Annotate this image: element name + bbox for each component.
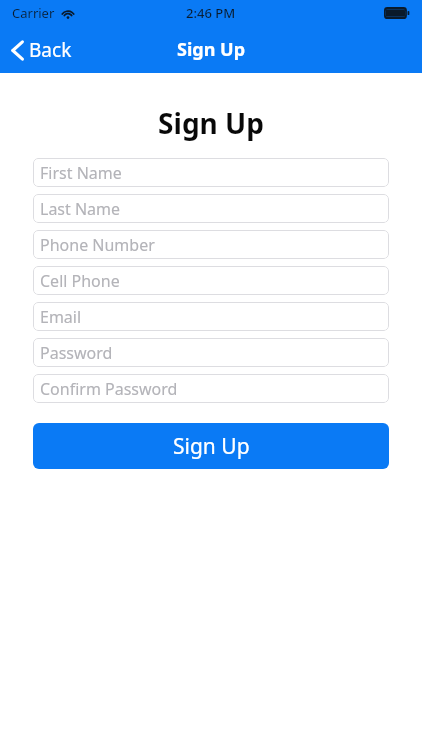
staticText: Confirm Password (40, 378, 178, 400)
button[interactable]: Last Name (33, 194, 389, 223)
button[interactable]: Email (33, 302, 389, 331)
staticText: Back (29, 37, 72, 63)
staticText: Password (40, 342, 113, 364)
staticText: 2:46 PM (186, 4, 236, 22)
button[interactable]: Password (33, 338, 389, 367)
staticText: First Name (40, 162, 122, 184)
button[interactable]: Sign Up (33, 423, 389, 469)
button[interactable]: Back (8, 33, 75, 67)
staticText: Last Name (40, 198, 121, 220)
staticText: Sign Up (173, 432, 250, 461)
button[interactable]: Confirm Password (33, 374, 389, 403)
staticText: Carrier (12, 4, 55, 22)
button[interactable]: Cell Phone (33, 266, 389, 295)
button[interactable]: First Name (33, 158, 389, 187)
staticText: Sign Up (177, 37, 246, 62)
staticText: Sign Up (0, 104, 422, 142)
staticText: Phone Number (40, 234, 155, 256)
staticText: Email (40, 306, 82, 328)
button[interactable]: Phone Number (33, 230, 389, 259)
staticText: Cell Phone (40, 270, 120, 292)
